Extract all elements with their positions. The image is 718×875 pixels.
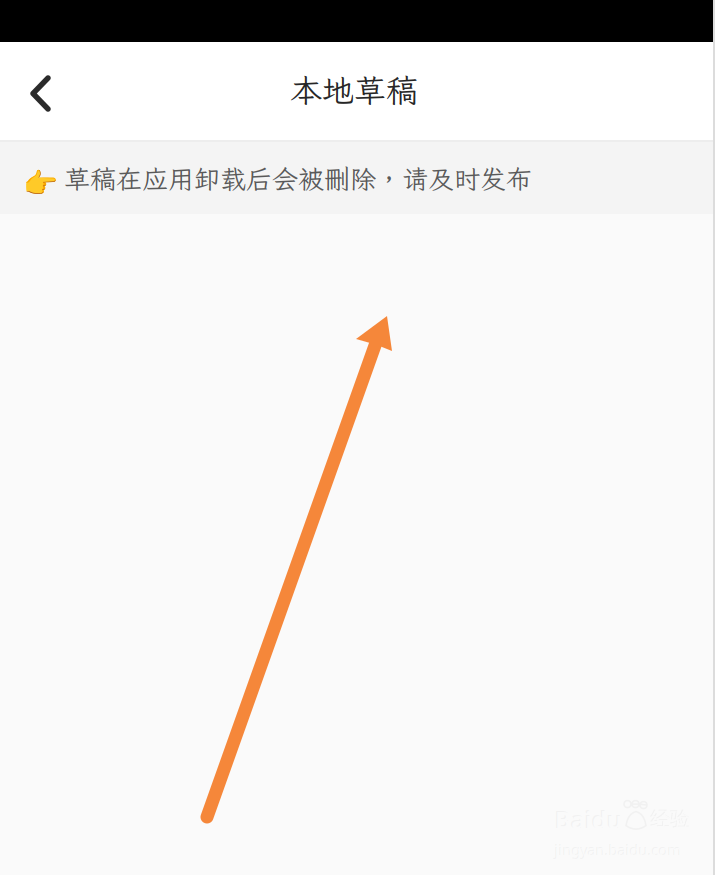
button[interactable]: Back xyxy=(0,42,96,140)
staticText: 草稿在应用卸载后会被删除，请及时发布 xyxy=(64,162,532,196)
staticText: 本地草稿 xyxy=(290,69,418,111)
staticText: 👉 xyxy=(23,167,58,199)
